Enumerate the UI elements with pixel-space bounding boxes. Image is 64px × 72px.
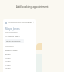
other: More [33, 22, 34, 24]
staticText: Consultation [5, 31, 18, 34]
staticText: Maya Jones [5, 27, 20, 31]
staticText: 10:30 [5, 57, 11, 60]
button[interactable]: 14:30 [5, 64, 34, 67]
staticText: 12:00 [5, 60, 11, 63]
button[interactable]: 12:00 [5, 60, 34, 63]
button[interactable]: Select available slot [5, 39, 24, 43]
staticText: Select a time [5, 49, 18, 52]
button[interactable]: 10:30 [5, 57, 34, 60]
button[interactable]: Appointment details [5, 21, 34, 24]
staticText: 12 March 2024 [5, 35, 20, 38]
button[interactable]: Add booking appointment [0, 0, 64, 13]
staticText: Add booking appointment [16, 5, 49, 9]
staticText: 14:30 [5, 64, 11, 67]
staticText: 09:00 [5, 53, 11, 56]
staticText: 16:00 [5, 67, 11, 70]
button[interactable]: 16:00 [5, 67, 34, 70]
button[interactable]: 09:00 [5, 53, 34, 56]
staticText: Morning [5, 45, 14, 48]
staticText: Edit [28, 21, 32, 24]
staticText: Appointment details [8, 21, 28, 24]
staticText: Select available slot [6, 40, 24, 43]
